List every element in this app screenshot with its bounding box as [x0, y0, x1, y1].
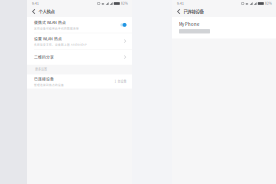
staticText: 已连接设备: [34, 76, 54, 82]
staticText: 9:41: [177, 1, 184, 6]
staticText: 已连接设备: [183, 8, 203, 15]
staticText: 个人热点: [38, 8, 54, 15]
staticText: 设置 WLAN 热点: [34, 36, 62, 41]
button[interactable]: Back: [172, 7, 183, 16]
staticText: 更多设置: [35, 67, 47, 71]
button[interactable]: 设置 WLAN 热点: [27, 33, 132, 49]
button[interactable]: 已连接设备: [27, 74, 132, 89]
staticText: My Phone: [179, 21, 199, 27]
staticText: 1 台设备: [114, 79, 126, 84]
button[interactable]: 二维码分享: [27, 49, 132, 65]
staticText: 名称和安全性、设备数上限 AndroidAP: [34, 43, 87, 46]
staticText: 二维码分享: [34, 54, 54, 60]
staticText: 管理连接到热点的设备: [34, 83, 64, 87]
staticText: 便携式 WLAN 热点: [34, 19, 66, 25]
staticText: 其他设备可使用此手机的数据连接: [34, 26, 79, 30]
button[interactable]: My Phone: [172, 17, 276, 38]
button[interactable]: Back: [27, 7, 38, 16]
staticText: 82%: [265, 1, 272, 6]
staticText: 82%: [121, 1, 128, 6]
staticText: 9:41: [32, 1, 39, 6]
button[interactable]: 便携式 WLAN 热点: [27, 17, 132, 33]
